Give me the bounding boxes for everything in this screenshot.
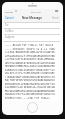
- staticText: -----BEGIN PGP PUBLIC KEY BLOCK: [5, 44, 54, 46]
- staticText: MGCwkIBwMCBhUIAgkKCwQWAgMBAh4BAh: [5, 90, 55, 92]
- staticText: zKLkrfJYcPvJfXRMJkRQ0KYTRxwFkgRt: [5, 72, 55, 74]
- staticText: New Message: [22, 16, 42, 20]
- staticText: HnnWqDsPaMm1Mk1ZEA8lVLAsGmRpQnRh: [5, 65, 55, 67]
- button[interactable]: Cc/Bcc:: [4, 28, 60, 34]
- button[interactable]: To:: [4, 22, 60, 28]
- staticText: xlLmNvbT6JATgEEwECACIFAlUkFQ8CGw: [5, 86, 55, 88]
- staticText: eAAAoJEFdTFRZ3nR3dKv8HidYXBsuVTQ: [5, 93, 55, 95]
- staticText: TJ0NAErqQVPuHkgXhN4SzBPBDzHcUCFR: [5, 76, 55, 78]
- staticText: Cancel: [5, 16, 14, 20]
- staticText: -----Version: GnuPG v1.4.11 (GNU: [5, 48, 55, 50]
- staticText: pYaRK=fTgH-----END PGP PUBLIC: [5, 97, 51, 99]
- staticText: Cc/Bcc:: [5, 29, 14, 33]
- staticText: Subject:: [5, 35, 15, 39]
- button[interactable]: Subject:: [4, 34, 60, 40]
- staticText: To:: [5, 23, 9, 27]
- button[interactable]: Cancel: [5, 16, 14, 20]
- button[interactable]: Send: [52, 16, 59, 20]
- staticText: KdTFdVPdFkHVv0cBvcDvEkABEBAAG0Jk: [5, 79, 55, 81]
- staticText: /Linux)mQENBFUkFQ8BCADjNjCUQwfxK: [5, 51, 55, 53]
- button[interactable]: Home: [27, 102, 38, 113]
- staticText: LRR2GA6pv1K2PJfM5EAmiRKDbxnufy8p: [5, 55, 55, 57]
- staticText: uHOFvQJpwXbs0TkRmJBI4Vy1wYBFAQ4w: [5, 62, 55, 64]
- staticText: ClyFbs3CdF9Xkr2k0XFkTqSoLvMNrAGL: [5, 58, 55, 60]
- staticText: 9:41 AM: [31, 10, 41, 13]
- staticText: Send: [52, 16, 59, 20]
- staticText: Carrier: [5, 10, 14, 13]
- staticText: pvaG4gRG9lIDxqb2huLmRvZUBleGFtcG: [5, 83, 55, 85]
- staticText: RlWRgYDVJuB1vsuhBkYPdVqk3sqYPtIv: [5, 69, 55, 71]
